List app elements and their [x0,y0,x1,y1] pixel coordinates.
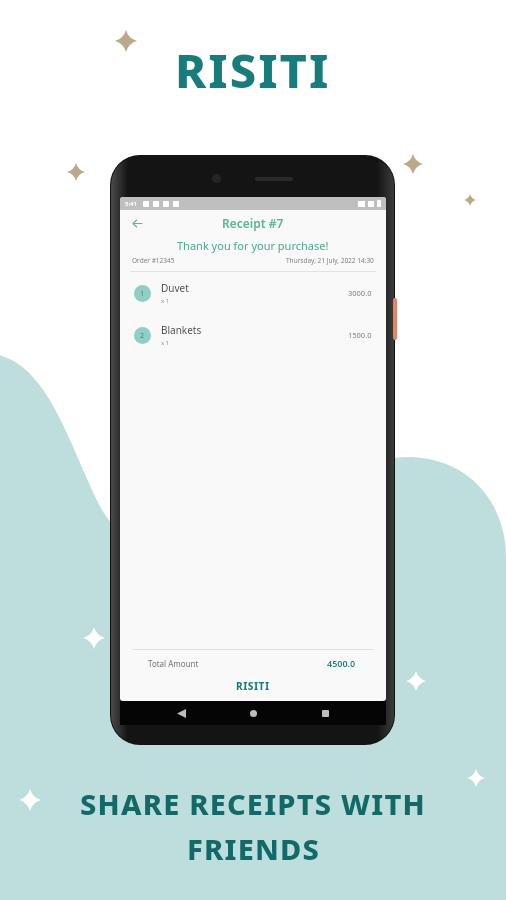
staticText: x 1 [161,297,170,305]
button[interactable]: Home [242,702,264,724]
staticText: 5:41 [125,200,137,208]
staticText: Blankets [161,323,202,337]
staticText: Total Amount [148,658,199,669]
staticText: Order #12345 [132,256,175,265]
staticText: FRIENDS [187,829,320,868]
button[interactable]: 1 [120,272,386,314]
staticText: RISITI [236,679,270,693]
staticText: 1 [140,289,145,299]
button[interactable]: 2 [120,314,386,356]
staticText: 1500.0 [348,330,372,340]
staticText: Receipt #7 [222,215,284,231]
staticText: x 1 [161,339,170,347]
staticText: Thank you for your purchase! [177,238,329,253]
staticText: Thursday, 21 July, 2022 14:30 [286,256,374,265]
staticText: 4500.0 [327,657,356,669]
staticText: Duvet [161,281,189,295]
staticText: 3000.0 [348,288,372,298]
staticText: SHARE RECEIPTS WITH [80,784,426,823]
button[interactable]: Back [170,702,192,724]
button[interactable]: Recent apps [314,702,336,724]
staticText: RISITI [175,38,331,102]
staticText: 2 [140,331,145,341]
button[interactable]: Back [126,212,148,234]
